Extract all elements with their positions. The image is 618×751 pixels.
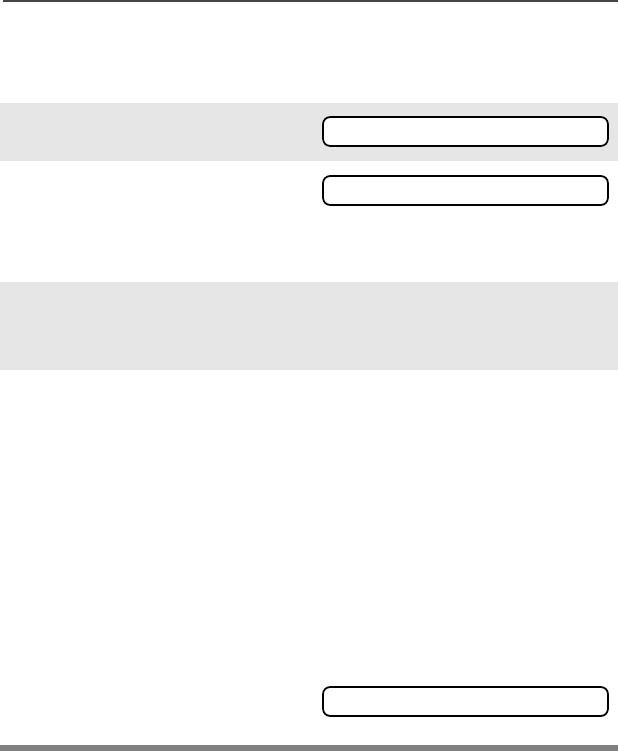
button[interactable]: First field: [322, 116, 609, 147]
button[interactable]: Second field: [322, 175, 609, 206]
button[interactable]: Third field: [322, 686, 609, 717]
